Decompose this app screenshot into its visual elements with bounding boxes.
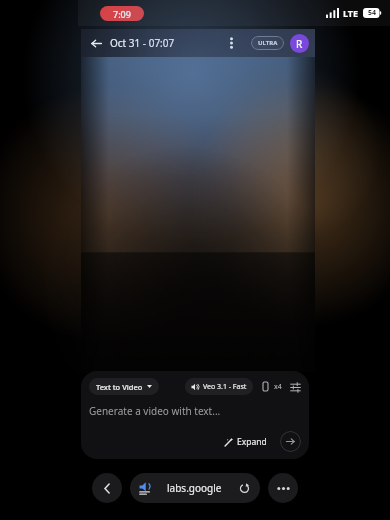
staticText: Veo 3.1 - Fast	[203, 382, 247, 392]
staticText: Generate a video with text...	[89, 404, 221, 418]
staticText: R	[296, 37, 303, 51]
staticText: x4	[274, 382, 282, 392]
button[interactable]: labs.google	[130, 473, 260, 503]
button[interactable]: More	[268, 473, 298, 503]
staticText: Oct 31 - 07:07	[110, 36, 175, 50]
button[interactable]: Reload	[238, 482, 251, 495]
staticText: LTE	[343, 7, 359, 19]
staticText: 7:09	[113, 8, 131, 20]
button[interactable]: Aspect ratio	[260, 381, 271, 392]
button[interactable]: More options	[223, 35, 239, 51]
staticText: 54	[368, 8, 377, 18]
button[interactable]: Back	[92, 473, 122, 503]
button[interactable]: Expand	[220, 433, 271, 451]
staticText: Text to Video	[96, 382, 143, 392]
button[interactable]: Veo 3.1 - Fast	[185, 378, 253, 395]
button[interactable]: Account	[290, 34, 309, 53]
staticText: ULTRA	[258, 39, 278, 47]
staticText: labs.google	[167, 481, 222, 495]
staticText: Expand	[237, 436, 267, 448]
button[interactable]: ULTRA	[251, 36, 284, 50]
button[interactable]: Text to Video	[89, 378, 159, 395]
button[interactable]: Settings	[289, 381, 301, 393]
button[interactable]: Back	[87, 34, 105, 52]
button[interactable]: Send	[280, 431, 301, 452]
